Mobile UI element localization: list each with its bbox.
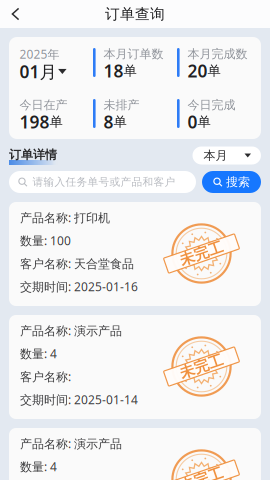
staticText: 单 [198,114,211,130]
staticText: 未完工 [179,244,224,262]
staticText: 01月 [20,60,57,83]
staticText: 本月 [203,148,227,163]
staticText: 本月订单数 [104,47,164,61]
staticText: 198 [20,110,50,133]
staticText: 数量: 4 [20,458,57,474]
staticText: 搜索 [226,175,250,189]
staticText: 未排产 [104,98,140,112]
staticText: 请输入任务单号或产品和客户 [32,175,175,188]
staticText: 单 [50,114,63,130]
staticText: 客户名称: [20,368,74,384]
staticText: 20 [188,59,208,82]
staticText: 产品名称: 演示产品 [20,322,122,338]
staticText: 单 [114,114,127,130]
staticText: 客户名称: 天合堂食品 [20,255,134,271]
staticText: 8 [104,110,114,133]
button[interactable]: Back [0,0,34,27]
staticText: 数量: 4 [20,345,57,361]
staticText: 数量: 100 [20,232,71,248]
staticText: 交期时间: 2025-01-14 [20,391,138,407]
staticText: 单 [208,63,221,79]
staticText: 交期时间: 2025-01-16 [20,278,138,294]
staticText: 18 [104,59,124,82]
staticText: 订单详情 [9,147,57,162]
staticText: 产品名称: 演示产品 [20,435,122,451]
staticText: 未完工 [179,470,224,480]
button[interactable]: 本月 [192,146,261,164]
staticText: 本月完成数 [188,47,248,61]
staticText: 2025年 [20,46,60,62]
staticText: 未完工 [179,357,224,375]
staticText: 今日完成 [188,98,236,112]
button[interactable]: 搜索 [202,171,261,193]
staticText: 产品名称: 打印机 [20,209,110,225]
staticText: 单 [124,63,137,79]
staticText: 订单查询 [105,5,165,23]
staticText: 0 [188,110,198,133]
staticText: 今日在产 [20,98,68,112]
